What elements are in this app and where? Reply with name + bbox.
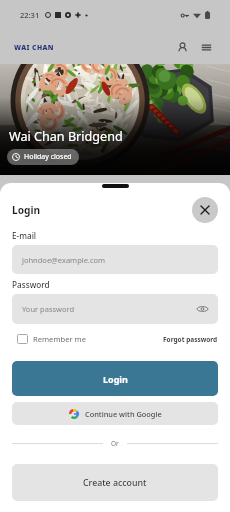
staticText: Your password	[22, 304, 75, 314]
staticText: Login	[12, 203, 41, 217]
staticText: 22:31	[20, 10, 40, 20]
button[interactable]: Account	[170, 35, 194, 59]
staticText: Holiday closed	[24, 152, 72, 162]
button[interactable]: Continue with Google	[12, 402, 218, 425]
staticText: Continue with Google	[85, 409, 162, 419]
button[interactable]: Create account	[12, 464, 218, 501]
button[interactable]: Remember me	[12, 331, 91, 347]
staticText: Login	[103, 373, 128, 385]
staticText: Password	[12, 279, 50, 290]
button[interactable]: Close	[192, 197, 218, 223]
staticText: E-mail	[12, 230, 37, 241]
staticText: Or	[111, 439, 119, 448]
button[interactable]: Your password	[12, 294, 218, 324]
staticText: Wai Chan Bridgend	[9, 128, 123, 145]
staticText: johndoe@example.com	[22, 255, 106, 265]
staticText: WAI CHAN	[14, 43, 54, 52]
button[interactable]: Login	[12, 361, 218, 396]
staticText: Remember me	[33, 334, 86, 344]
button[interactable]: Forgot password	[163, 332, 218, 347]
staticText: Create account	[83, 477, 147, 489]
button[interactable]: johndoe@example.com	[12, 245, 218, 274]
button[interactable]: Menu	[194, 35, 218, 59]
